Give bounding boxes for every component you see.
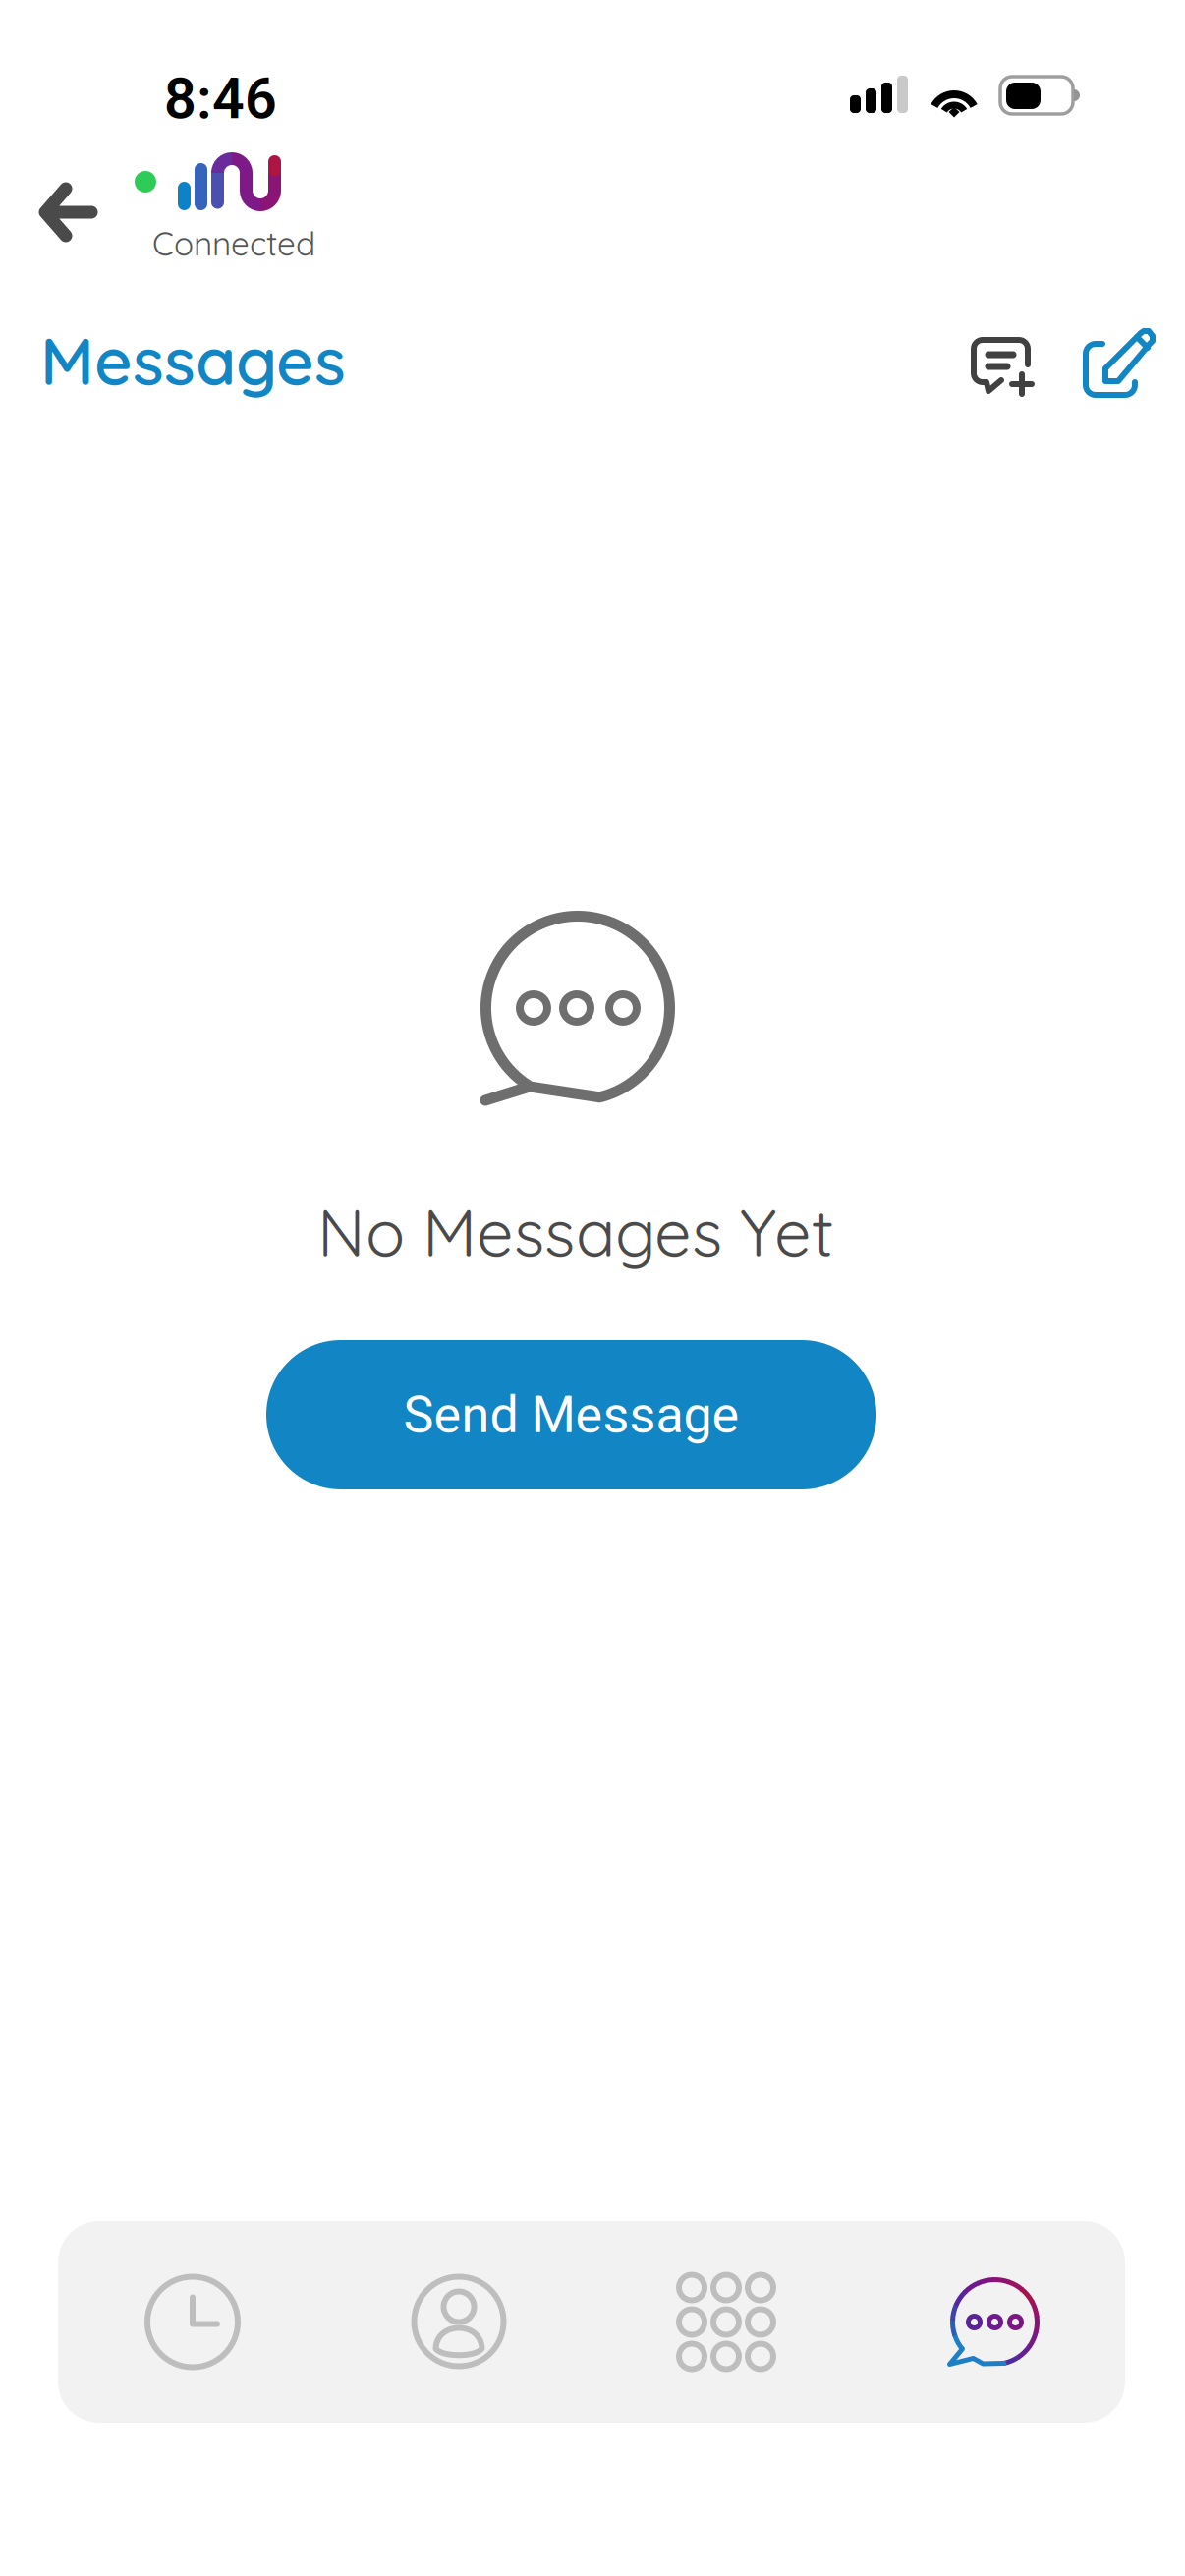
button[interactable]: Compose <box>1067 312 1171 415</box>
button[interactable]: Contacts <box>361 2221 557 2423</box>
staticText: No Messages Yet <box>317 1191 834 1273</box>
button[interactable]: Recents <box>94 2221 291 2423</box>
staticText: Connected <box>152 223 315 264</box>
button[interactable]: Messages <box>36 313 350 407</box>
staticText: Send Message <box>403 1385 739 1445</box>
button[interactable]: New group message <box>955 321 1048 412</box>
staticText: 8:46 <box>164 66 277 132</box>
staticText: Messages <box>40 319 346 401</box>
button[interactable]: Messages <box>894 2221 1091 2423</box>
button[interactable]: Send Message <box>266 1340 876 1489</box>
button[interactable]: Keypad <box>628 2221 824 2423</box>
button[interactable]: Back <box>19 163 118 261</box>
